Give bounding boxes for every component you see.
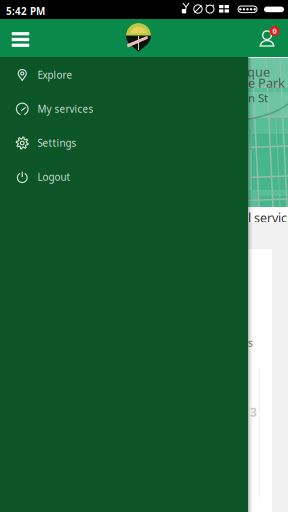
button[interactable]: Profile <box>253 17 287 55</box>
button[interactable]: Logout <box>0 160 248 194</box>
button[interactable]: My services <box>0 92 248 126</box>
staticText: 5:42 PM <box>6 4 45 18</box>
staticText: 0 <box>272 26 276 36</box>
staticText: My services <box>37 102 93 116</box>
staticText: Settings <box>37 136 76 150</box>
button[interactable]: Explore <box>0 58 248 92</box>
staticText: Logout <box>37 170 70 184</box>
staticText: 3 <box>250 404 257 420</box>
staticText: n St <box>248 90 268 106</box>
staticText: que <box>247 63 270 80</box>
button[interactable]: Open navigation menu <box>0 18 41 59</box>
staticText: Explore <box>37 68 72 82</box>
staticText: s <box>248 336 253 350</box>
button[interactable]: Settings <box>0 126 248 160</box>
staticText: le Park <box>245 74 285 91</box>
staticText: l servicio <box>248 209 288 226</box>
